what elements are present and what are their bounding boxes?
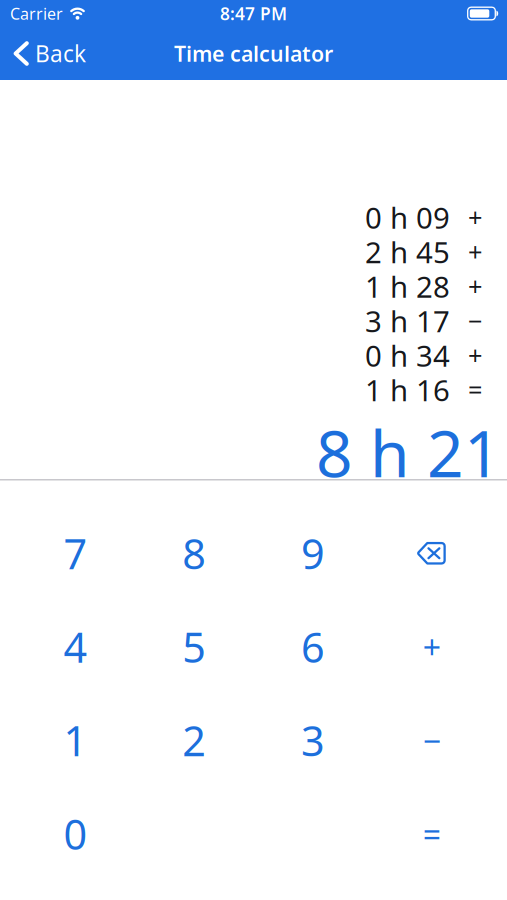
staticText: 1 xyxy=(63,713,87,768)
staticText: 1 h 16 xyxy=(365,370,450,409)
staticText: 8:47 PM xyxy=(220,2,287,25)
button[interactable]: 3 xyxy=(253,693,372,787)
button[interactable]: 8 xyxy=(135,506,254,600)
staticText: 5 xyxy=(182,619,206,674)
staticText: 2 h 45 xyxy=(365,232,450,271)
staticText: 2 xyxy=(182,713,206,768)
staticText: 9 xyxy=(301,526,325,581)
staticText: + xyxy=(468,200,482,234)
button[interactable]: 7 xyxy=(16,506,135,600)
button[interactable]: 5 xyxy=(135,600,254,693)
staticText: − xyxy=(468,304,482,337)
staticText: 6 xyxy=(301,619,325,674)
staticText: Carrier xyxy=(10,3,63,24)
button[interactable]: 1 xyxy=(16,693,135,787)
button[interactable]: = xyxy=(372,787,491,880)
staticText: + xyxy=(423,625,441,668)
staticText: 1 h 28 xyxy=(365,267,450,306)
staticText: = xyxy=(423,812,441,855)
staticText: 0 h 34 xyxy=(365,336,450,375)
staticText: + xyxy=(468,235,482,268)
button[interactable]: 6 xyxy=(253,600,372,693)
staticText: 8 xyxy=(182,526,206,581)
staticText: 8 h 21 xyxy=(316,410,501,495)
button[interactable]: − xyxy=(372,693,491,787)
staticText: Time calculator xyxy=(174,39,333,68)
button[interactable]: 4 xyxy=(16,600,135,693)
staticText: − xyxy=(423,719,441,761)
staticText: 7 xyxy=(63,526,87,581)
staticText: 0 xyxy=(63,806,87,861)
button[interactable]: 0 xyxy=(16,787,135,880)
staticText: + xyxy=(468,338,482,372)
staticText: Back xyxy=(35,38,86,68)
staticText: + xyxy=(468,269,482,303)
staticText: 0 h 09 xyxy=(365,198,450,237)
staticText: = xyxy=(468,373,482,406)
staticText: 3 xyxy=(301,713,325,768)
button[interactable]: Delete xyxy=(372,506,491,600)
button[interactable]: + xyxy=(372,600,491,693)
staticText: 4 xyxy=(63,619,87,674)
button[interactable]: 2 xyxy=(135,693,254,787)
staticText: 3 h 17 xyxy=(365,301,450,340)
button[interactable]: 9 xyxy=(253,506,372,600)
button[interactable]: Back xyxy=(0,38,86,68)
